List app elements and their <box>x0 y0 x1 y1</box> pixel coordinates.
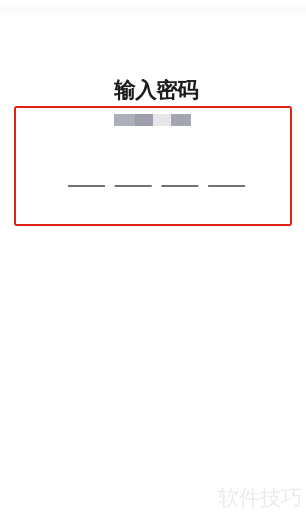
button[interactable]: Password field <box>15 110 292 220</box>
staticText: 软件技巧 <box>218 485 302 511</box>
staticText: 输入密码 <box>114 77 198 104</box>
